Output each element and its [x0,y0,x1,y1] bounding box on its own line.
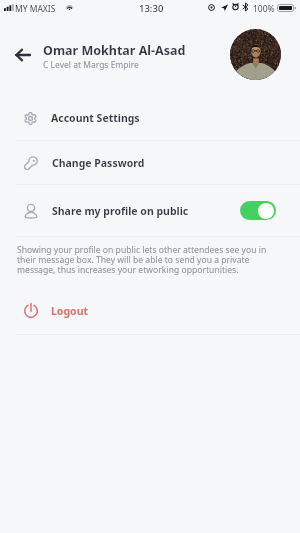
button[interactable]: Share my profile on public [0,185,300,236]
button[interactable]: Logout [0,286,300,336]
staticText: 13:30 [139,2,164,15]
staticText: Showing your profile on public lets othe… [17,244,280,275]
staticText: Account Settings [51,111,140,125]
staticText: Share my profile on public [52,204,189,218]
button[interactable]: Share my profile toggle [240,201,276,220]
staticText: Omar Mokhtar Al-Asad [43,42,186,59]
staticText: Logout [51,304,89,318]
staticText: C Level at Margs Empire [43,59,139,71]
staticText: MY MAXIS [15,3,56,15]
button[interactable]: Change Password [0,141,300,184]
staticText: Change Password [52,156,145,170]
button[interactable]: Profile photo [230,29,281,80]
button[interactable]: Account Settings [0,96,300,140]
staticText: 100% [253,3,275,15]
button[interactable]: Back [12,44,34,66]
